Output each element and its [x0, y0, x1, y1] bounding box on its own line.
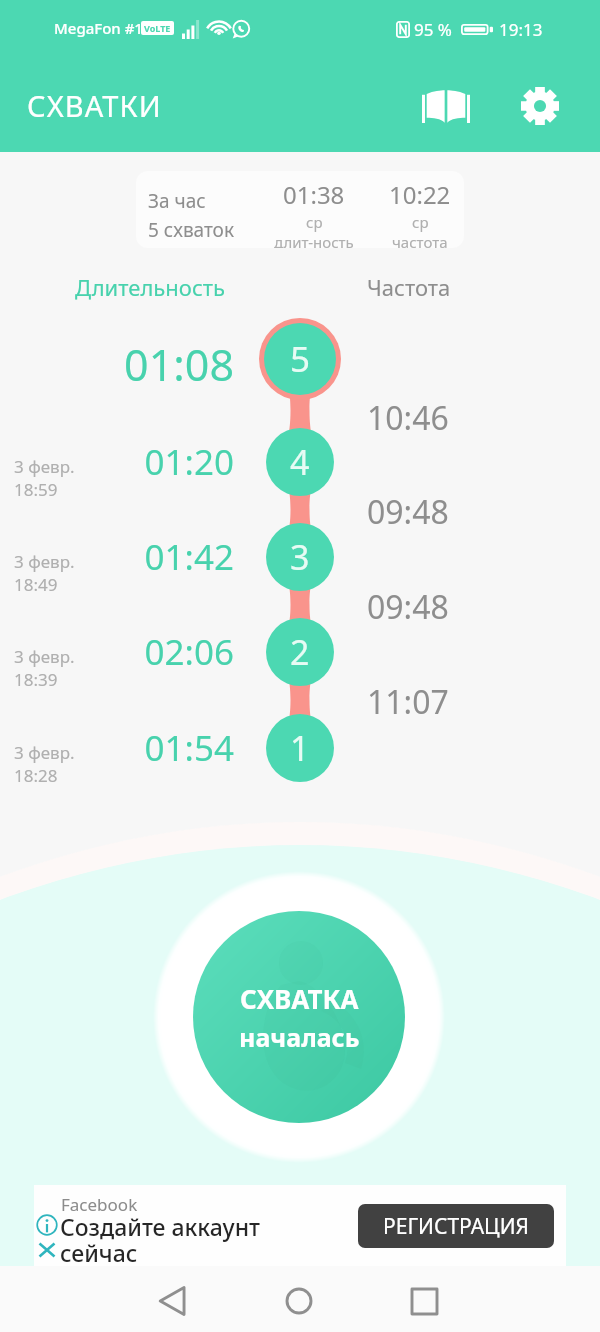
- staticText: 11:07: [367, 680, 449, 724]
- staticText: Частота: [367, 272, 451, 302]
- button[interactable]: За час: [136, 171, 464, 248]
- staticText: 19:13: [499, 18, 543, 41]
- button[interactable]: 01:08: [74, 335, 234, 394]
- staticText: Длительность: [75, 272, 225, 302]
- button[interactable]: Facebook: [34, 1185, 566, 1266]
- button[interactable]: Home: [275, 1277, 323, 1325]
- staticText: 18:49: [14, 573, 58, 596]
- staticText: ср: [412, 212, 429, 232]
- button[interactable]: РЕГИСТРАЦИЯ: [358, 1204, 554, 1248]
- staticText: РЕГИСТРАЦИЯ: [383, 1212, 529, 1241]
- button[interactable]: Close ad: [36, 1239, 58, 1261]
- staticText: 18:28: [14, 764, 58, 787]
- staticText: Создайте аккаунт: [60, 1211, 261, 1242]
- staticText: 01:20: [144, 438, 234, 486]
- staticText: 1: [290, 725, 310, 771]
- staticText: СХВАТКИ: [27, 86, 162, 125]
- button[interactable]: Instructions: [414, 74, 478, 138]
- button[interactable]: 1: [266, 714, 334, 782]
- button[interactable]: 01:42: [74, 533, 234, 581]
- staticText: 4: [290, 439, 310, 485]
- button[interactable]: Recents: [400, 1277, 448, 1325]
- staticText: Facebook: [61, 1193, 138, 1216]
- staticText: 01:54: [144, 724, 234, 772]
- staticText: 3 февр.: [14, 455, 75, 478]
- staticText: 3 февр.: [14, 741, 75, 764]
- staticText: длит-ность: [274, 232, 354, 248]
- staticText: 95 %: [414, 18, 452, 41]
- button[interactable]: 01:54: [74, 724, 234, 772]
- staticText: 02:06: [144, 628, 234, 676]
- staticText: 09:48: [367, 490, 449, 534]
- staticText: 18:59: [14, 478, 58, 501]
- button[interactable]: 2: [266, 618, 334, 686]
- button[interactable]: СХВАТКА: [193, 911, 405, 1123]
- staticText: 3 февр.: [14, 645, 75, 668]
- staticText: ср: [306, 212, 323, 232]
- button[interactable]: Settings: [508, 74, 572, 138]
- staticText: 5 схваток: [148, 217, 234, 243]
- staticText: 10:46: [367, 396, 449, 440]
- button[interactable]: Back: [148, 1277, 196, 1325]
- staticText: СХВАТКА: [240, 981, 359, 1016]
- button[interactable]: 01:20: [74, 438, 234, 486]
- button[interactable]: 02:06: [74, 628, 234, 676]
- staticText: MegaFon #1: [54, 18, 143, 38]
- button[interactable]: 4: [266, 428, 334, 496]
- button[interactable]: Ad info: [36, 1214, 58, 1236]
- staticText: 3 февр.: [14, 550, 75, 573]
- staticText: 2: [290, 629, 310, 675]
- staticText: 5: [290, 335, 311, 383]
- staticText: частота: [392, 232, 448, 248]
- staticText: За час: [148, 188, 206, 214]
- button[interactable]: 5: [259, 318, 341, 400]
- staticText: 09:48: [367, 585, 449, 629]
- staticText: 01:42: [144, 533, 234, 581]
- staticText: 01:08: [124, 335, 234, 394]
- staticText: сейчас: [60, 1237, 138, 1268]
- staticText: 10:22: [389, 178, 451, 211]
- button[interactable]: 3: [266, 523, 334, 591]
- staticText: 18:39: [14, 668, 58, 691]
- staticText: VoLTE: [144, 22, 171, 34]
- staticText: началась: [239, 1020, 360, 1054]
- staticText: 3: [290, 534, 310, 580]
- staticText: 01:38: [283, 178, 345, 211]
